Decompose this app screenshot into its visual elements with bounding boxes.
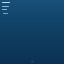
- button[interactable]: More: [1, 59, 63, 63]
- button[interactable]: [1, 5, 63, 7]
- button[interactable]: [1, 8, 63, 10]
- button[interactable]: [1, 1, 63, 4]
- button[interactable]: [1, 12, 63, 15]
